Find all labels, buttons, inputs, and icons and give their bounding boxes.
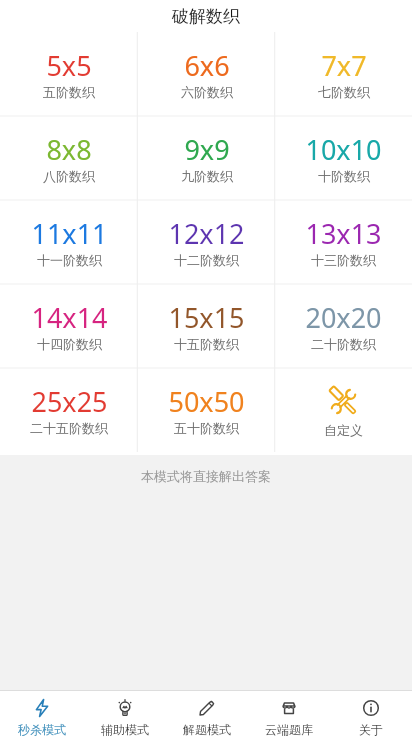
button[interactable]: 12x12 [138,200,275,284]
staticText: 云端题库 [265,722,313,737]
staticText: 二十五阶数织 [30,420,108,436]
staticText: 10x10 [305,131,382,168]
button[interactable]: 云端题库 [248,691,330,741]
staticText: 解题模式 [183,722,231,737]
staticText: 八阶数织 [43,168,95,184]
staticText: 13x13 [305,215,382,252]
button[interactable]: 秒杀模式 [0,691,83,741]
staticText: 辅助模式 [101,722,149,737]
button[interactable]: 辅助模式 [83,691,166,741]
staticText: 6x6 [184,47,230,84]
staticText: 五十阶数织 [174,420,239,436]
staticText: 十二阶数织 [174,252,239,268]
button[interactable]: 6x6 [138,32,275,116]
button[interactable]: 14x14 [0,284,138,368]
staticText: 25x25 [31,383,108,420]
button[interactable]: 15x15 [138,284,275,368]
staticText: 九阶数织 [181,168,233,184]
staticText: 本模式将直接解出答案 [141,468,271,484]
staticText: 六阶数织 [181,84,233,100]
staticText: 5x5 [46,47,92,84]
button[interactable]: 解题模式 [166,691,248,741]
staticText: 7x7 [321,47,367,84]
staticText: 关于 [359,722,383,737]
button[interactable]: 20x20 [275,284,412,368]
staticText: 自定义 [324,422,363,438]
staticText: 8x8 [46,131,92,168]
staticText: 七阶数织 [318,84,370,100]
staticText: 破解数织 [172,6,240,27]
staticText: 十五阶数织 [174,336,239,352]
staticText: 五阶数织 [43,84,95,100]
staticText: 20x20 [305,299,382,336]
button[interactable]: 50x50 [138,368,275,452]
staticText: 11x11 [31,215,108,252]
button[interactable]: 7x7 [275,32,412,116]
staticText: 十四阶数织 [37,336,102,352]
staticText: 二十阶数织 [311,336,376,352]
staticText: 十三阶数织 [311,252,376,268]
button[interactable]: 9x9 [138,116,275,200]
button[interactable]: 25x25 [0,368,138,452]
staticText: 秒杀模式 [18,722,66,737]
staticText: 9x9 [184,131,230,168]
staticText: 十阶数织 [318,168,370,184]
button[interactable]: 11x11 [0,200,138,284]
button[interactable]: 关于 [330,691,412,741]
staticText: 50x50 [168,383,245,420]
button[interactable]: 8x8 [0,116,138,200]
button[interactable]: 10x10 [275,116,412,200]
button[interactable]: 自定义 [275,368,412,452]
staticText: 12x12 [168,215,245,252]
staticText: 15x15 [168,299,245,336]
button[interactable]: 13x13 [275,200,412,284]
staticText: 14x14 [31,299,108,336]
button[interactable]: 5x5 [0,32,138,116]
staticText: 十一阶数织 [37,252,102,268]
